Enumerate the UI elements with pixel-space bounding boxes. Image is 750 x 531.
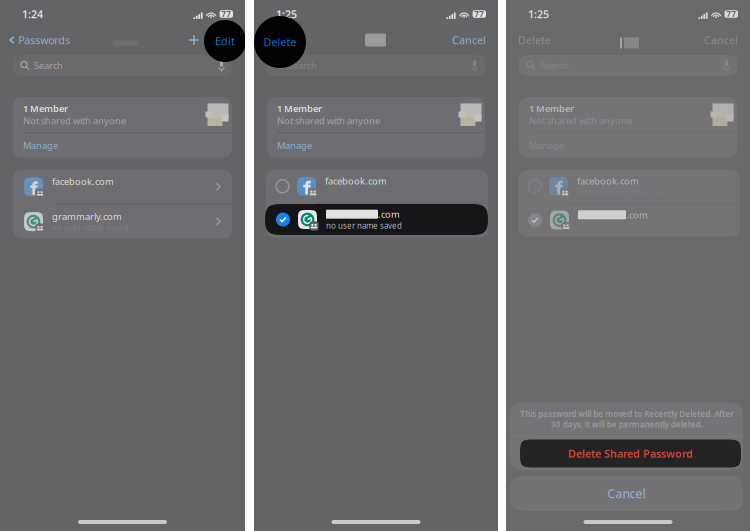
staticText: Edit (212, 33, 232, 47)
staticText: 77 (221, 9, 231, 19)
staticText: Cancel (607, 485, 645, 501)
staticText: facebook.com (52, 175, 114, 188)
staticText: Search (34, 59, 63, 72)
staticText: 1 Member (23, 102, 68, 114)
button[interactable]: Edit (206, 28, 245, 52)
staticText: grammarly.com (52, 210, 122, 222)
button[interactable]: Cancel (452, 28, 498, 52)
staticText: .com (378, 208, 400, 220)
staticText: Passwords (18, 33, 70, 47)
button[interactable]: Manage (267, 133, 312, 158)
button[interactable]: Delete Shared Password (516, 437, 737, 470)
staticText: Delete (263, 35, 296, 49)
staticText: no user name saved (52, 222, 128, 233)
staticText: 1 Member (277, 102, 322, 114)
staticText: 77 (726, 9, 736, 19)
staticText: 1:25 (528, 7, 549, 21)
staticText: This password will be moved to Recently … (520, 409, 733, 430)
staticText: Search (540, 59, 569, 72)
staticText: Manage (23, 139, 58, 151)
button[interactable]: grammarly.com (13, 205, 232, 239)
staticText: Delete Shared Password (568, 446, 693, 461)
button[interactable]: Manage (13, 133, 58, 158)
staticText: Manage (277, 139, 312, 151)
staticText: 1:25 (276, 7, 297, 21)
staticText: Cancel (452, 33, 486, 47)
staticText: Not shared with anyone (529, 114, 632, 127)
staticText: .com (626, 209, 648, 221)
button[interactable]: facebook.com (13, 170, 232, 204)
staticText: 77 (474, 9, 484, 19)
button[interactable]: Delete (254, 28, 299, 52)
staticText: facebook.com (577, 175, 639, 187)
button[interactable]: Passwords (0, 28, 70, 52)
button[interactable]: Add password (182, 28, 206, 52)
staticText: Delete (266, 33, 299, 47)
staticText: facebook.com (325, 175, 387, 187)
staticText: Delete (518, 33, 551, 47)
staticText: 1:24 (22, 7, 43, 21)
staticText: Not shared with anyone (23, 114, 126, 127)
staticText: Search (288, 59, 317, 72)
staticText: Cancel (704, 33, 738, 47)
button[interactable]: .com (265, 204, 488, 235)
button[interactable]: Cancel (510, 476, 743, 511)
staticText: Edit (215, 34, 235, 48)
staticText: no user name saved (326, 220, 402, 231)
button[interactable]: Manage (519, 133, 564, 158)
staticText: Not shared with anyone (277, 114, 380, 127)
staticText: Manage (529, 139, 564, 151)
staticText: 1 Member (529, 102, 574, 114)
